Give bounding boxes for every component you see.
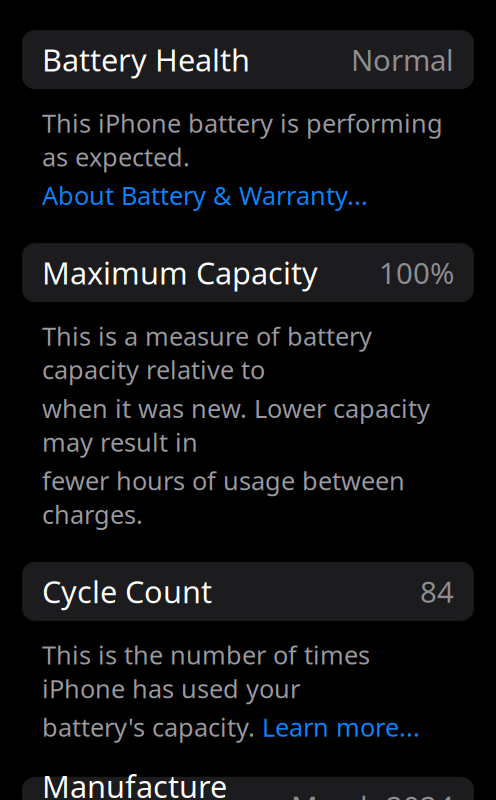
staticText: Battery Health <box>42 39 250 80</box>
staticText: About Battery & Warranty... <box>42 178 368 212</box>
staticText: battery's capacity. <box>42 710 262 744</box>
staticText: fewer hours of usage between charges. <box>42 464 405 531</box>
staticText: This is the number of times iPhone has u… <box>42 638 370 705</box>
button[interactable]: This is the number of times iPhone has u… <box>0 638 496 744</box>
staticText: Normal <box>351 40 454 79</box>
staticText: Learn more... <box>262 710 420 744</box>
staticText: 100% <box>379 253 454 292</box>
button[interactable]: Battery Health <box>0 30 496 89</box>
staticText: when it was new. Lower capacity may resu… <box>42 391 430 459</box>
button[interactable]: Maximum Capacity <box>0 243 496 302</box>
staticText: Maximum Capacity <box>42 252 318 293</box>
button[interactable]: This iPhone battery is performing as exp… <box>0 106 496 212</box>
button[interactable]: Cycle Count <box>0 562 496 621</box>
staticText: This is a measure of battery capacity re… <box>42 319 372 386</box>
staticText: 84 <box>420 572 454 611</box>
staticText: This iPhone battery is performing as exp… <box>42 106 443 173</box>
button[interactable]: Manufacture Date <box>22 777 474 800</box>
staticText: Manufacture Date <box>42 766 227 800</box>
staticText: Cycle Count <box>42 571 212 612</box>
staticText: March 2024 <box>291 787 454 800</box>
